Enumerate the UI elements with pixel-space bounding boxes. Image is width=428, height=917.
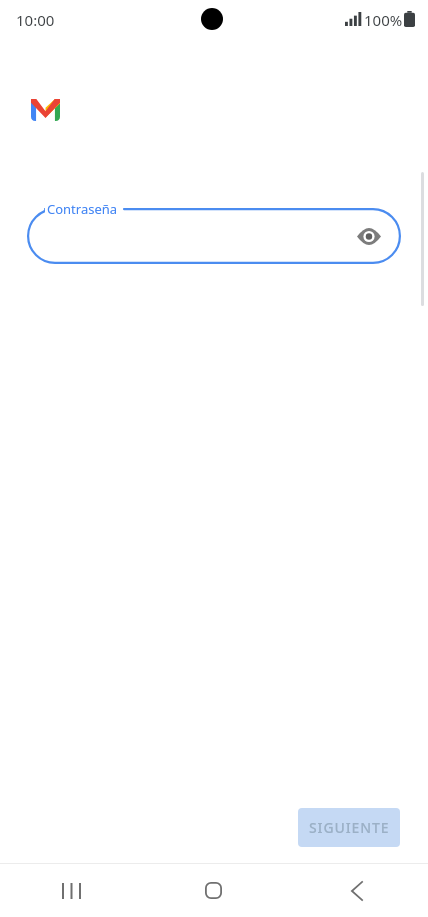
button[interactable]: Recientes bbox=[0, 864, 142, 917]
button[interactable]: Atrás bbox=[285, 864, 428, 917]
staticText: 100% bbox=[364, 10, 403, 30]
staticText: 10:00 bbox=[16, 10, 55, 30]
button[interactable]: Inicio bbox=[142, 864, 285, 917]
button[interactable]: Campo Contraseña bbox=[27, 208, 401, 264]
button[interactable]: SIGUIENTE bbox=[298, 808, 400, 847]
staticText: SIGUIENTE bbox=[309, 818, 390, 837]
button[interactable]: Mostrar contraseña bbox=[349, 216, 389, 256]
staticText: Contraseña bbox=[47, 200, 118, 218]
